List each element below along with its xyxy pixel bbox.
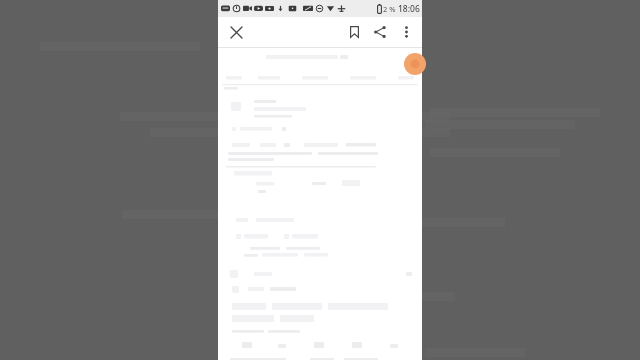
button[interactable]: Close [224, 20, 248, 44]
button[interactable]: Primary action [232, 231, 272, 243]
button[interactable]: More options [393, 19, 419, 45]
staticText: 18:06 [398, 3, 420, 15]
button[interactable]: Article result [228, 98, 412, 120]
staticText: 2 % [383, 4, 396, 14]
button[interactable]: Secondary action [280, 231, 322, 243]
button[interactable]: Bookmark [341, 19, 367, 45]
button[interactable]: Compose [404, 53, 426, 75]
button[interactable]: Navigation tabs [226, 74, 414, 88]
button[interactable]: Share [367, 19, 393, 45]
